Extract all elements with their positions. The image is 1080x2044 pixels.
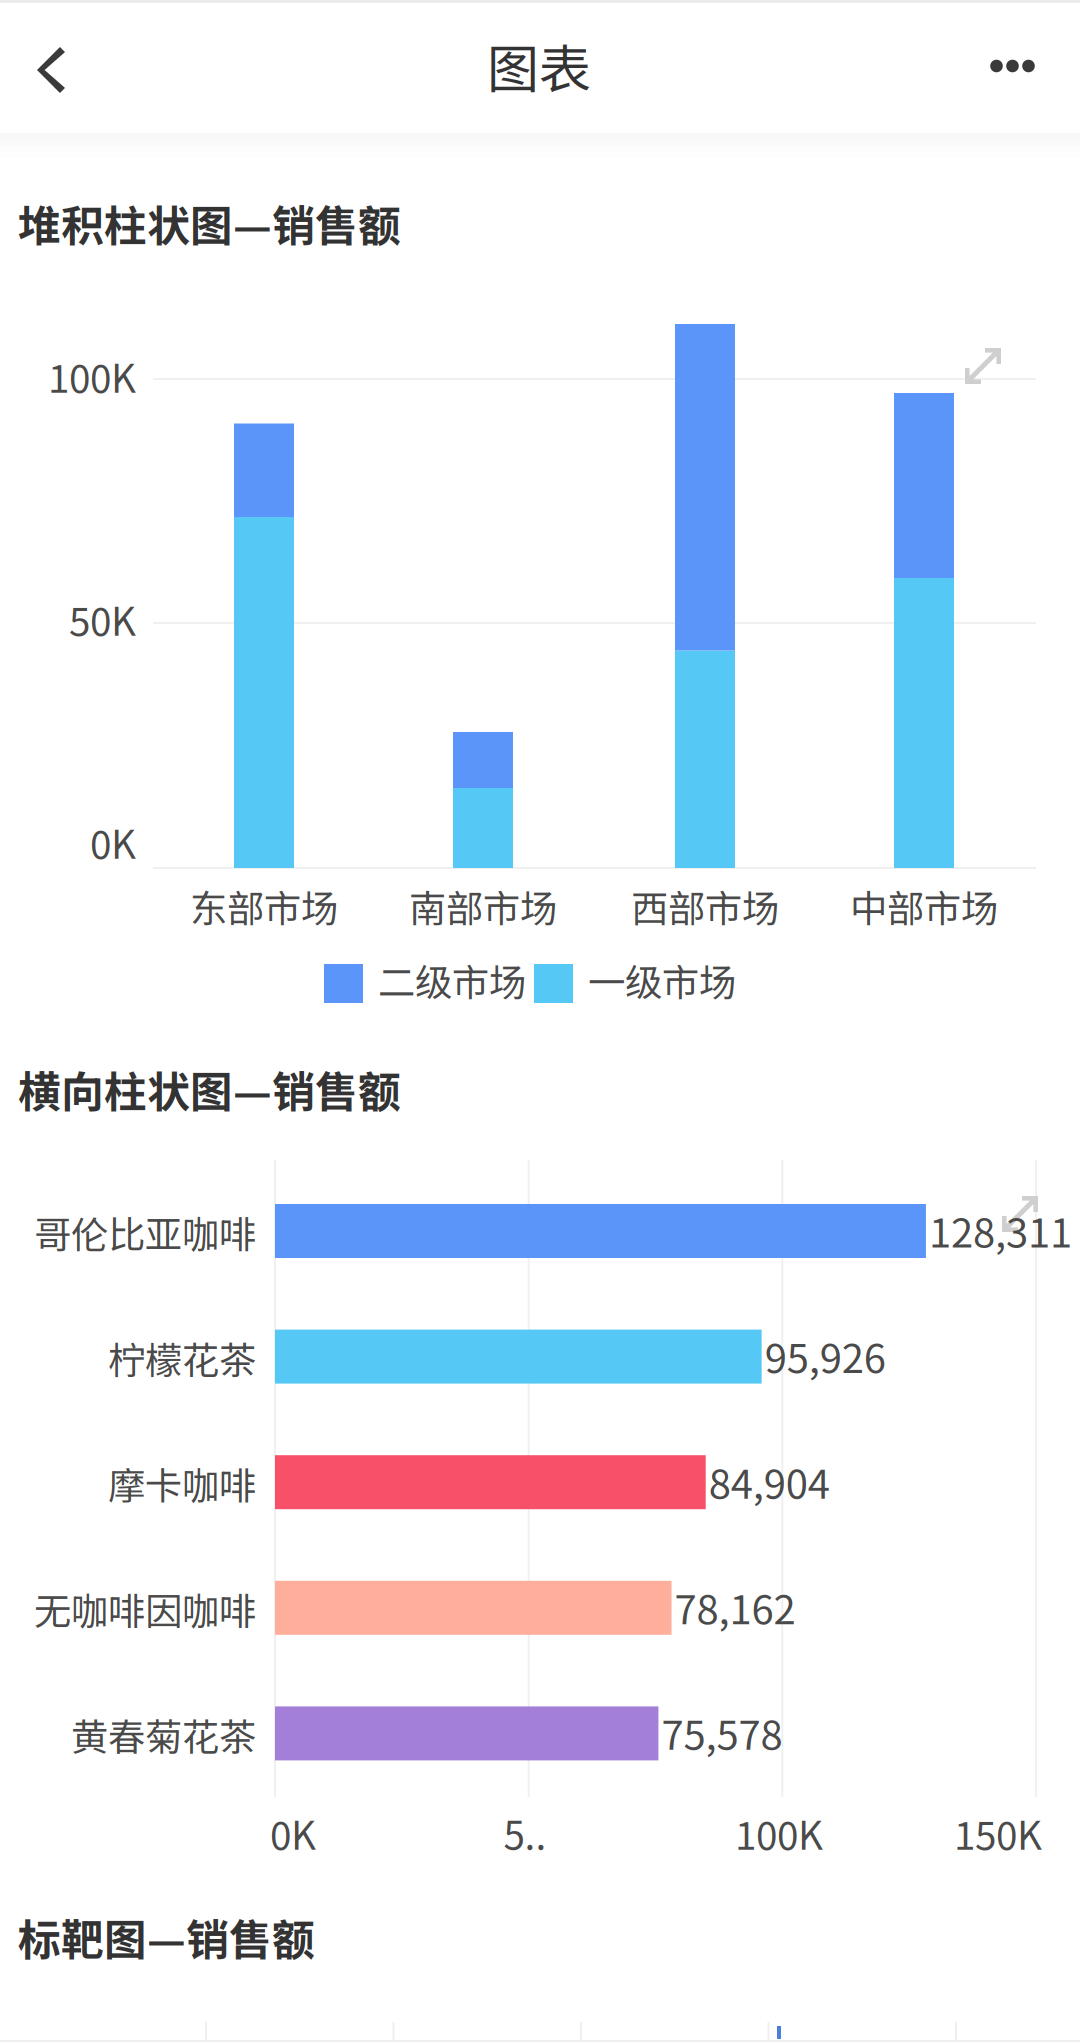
staticText: 75,578 [661, 1703, 782, 1761]
staticText: 柠檬花茶 [108, 1331, 256, 1385]
staticText: 中部市场 [850, 879, 998, 933]
staticText: 堆积柱状图—销售额 [18, 192, 401, 254]
button[interactable]: 返回 [28, 33, 77, 103]
staticText: 黄春菊花茶 [71, 1707, 256, 1761]
button[interactable]: 图表 [460, 28, 618, 103]
staticText: 二级市场 [378, 953, 526, 1007]
staticText: 78,162 [674, 1578, 795, 1636]
staticText: 南部市场 [409, 879, 557, 933]
staticText: 无咖啡因咖啡 [34, 1582, 256, 1636]
staticText: 一级市场 [588, 953, 736, 1007]
staticText: 150K [954, 1805, 1042, 1861]
staticText: 128,311 [929, 1201, 1072, 1259]
staticText: 0K [270, 1805, 316, 1861]
staticText: 标靶图—销售额 [18, 1906, 315, 1968]
button[interactable]: 更多 [979, 34, 1045, 92]
staticText: 0K [90, 814, 136, 870]
staticText: 5.. [503, 1805, 546, 1861]
staticText: 84,904 [709, 1452, 830, 1510]
staticText: 图表 [487, 28, 591, 103]
staticText: 西部市场 [631, 879, 779, 933]
staticText: 95,926 [765, 1327, 886, 1384]
staticText: 100K [48, 348, 136, 404]
staticText: 横向柱状图—销售额 [18, 1058, 401, 1120]
staticText: 100K [735, 1805, 823, 1861]
staticText: 摩卡咖啡 [108, 1456, 256, 1510]
staticText: 东部市场 [190, 879, 338, 933]
staticText: 哥伦比亚咖啡 [34, 1205, 256, 1259]
staticText: 50K [69, 591, 136, 647]
